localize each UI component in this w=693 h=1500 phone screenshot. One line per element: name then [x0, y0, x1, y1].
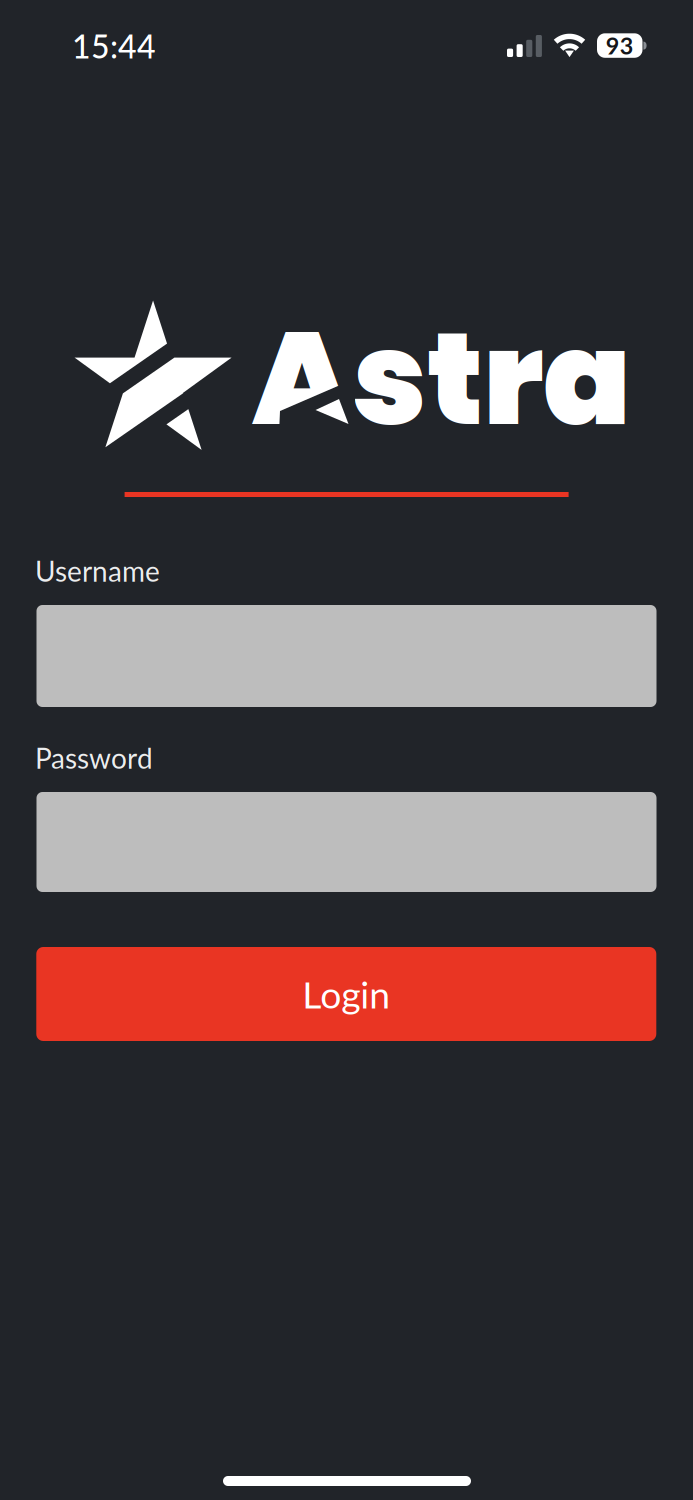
- staticText: Astra: [252, 288, 631, 469]
- staticText: Password: [35, 741, 153, 775]
- staticText: 93: [606, 32, 634, 60]
- button[interactable]: Login: [36, 947, 656, 1041]
- staticText: Username: [35, 554, 160, 588]
- staticText: Login: [302, 972, 390, 1016]
- staticText: 15:44: [72, 27, 156, 65]
